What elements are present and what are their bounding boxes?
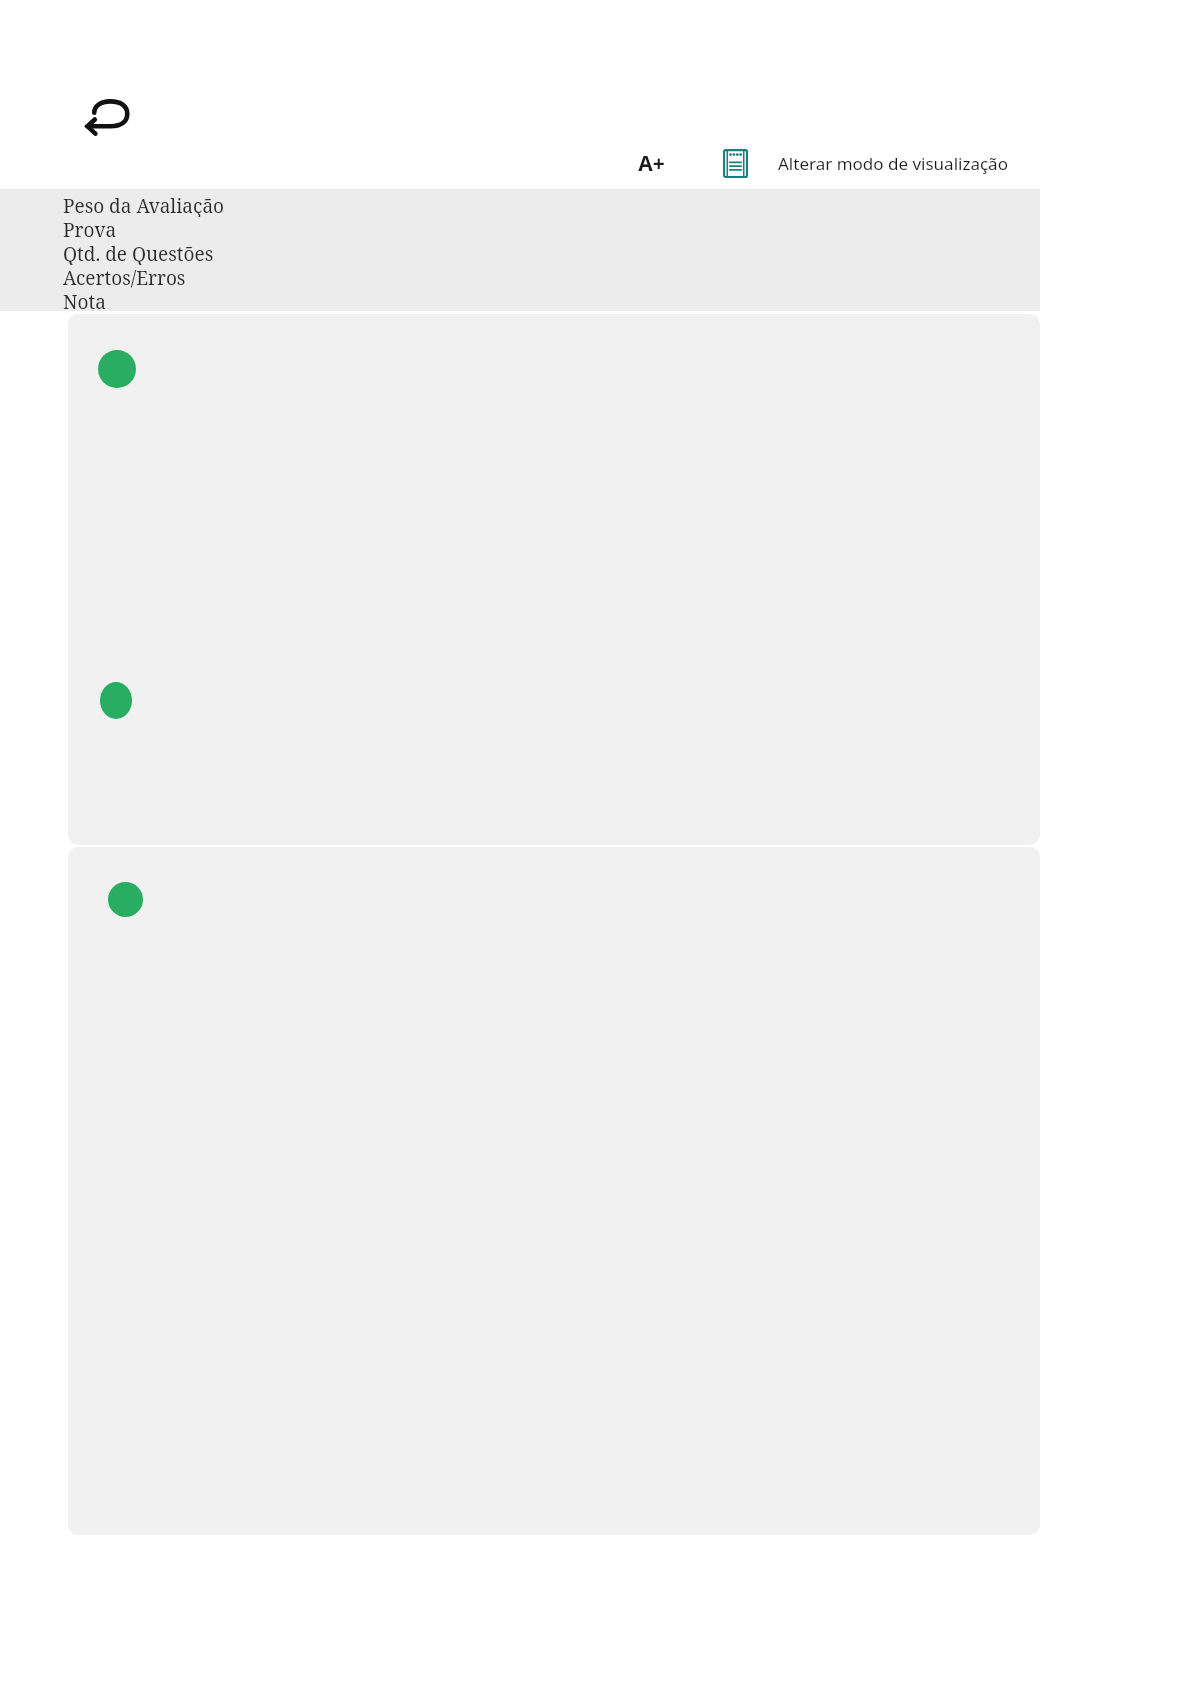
staticText: Peso da Avaliação	[63, 193, 225, 217]
staticText: Acertos/Erros	[63, 265, 186, 289]
staticText: A+	[638, 149, 665, 178]
button[interactable]: Voltar	[78, 92, 134, 144]
staticText: Prova	[63, 217, 117, 241]
staticText: Alterar modo de visualização	[778, 152, 1008, 175]
button[interactable]	[68, 314, 1040, 845]
staticText: Qtd. de Questões	[63, 241, 214, 265]
button[interactable]	[68, 847, 1040, 1535]
button[interactable]: A+	[605, 143, 697, 183]
button[interactable]: Alterar modo de visualização	[703, 143, 1045, 183]
staticText: Nota	[63, 289, 106, 311]
